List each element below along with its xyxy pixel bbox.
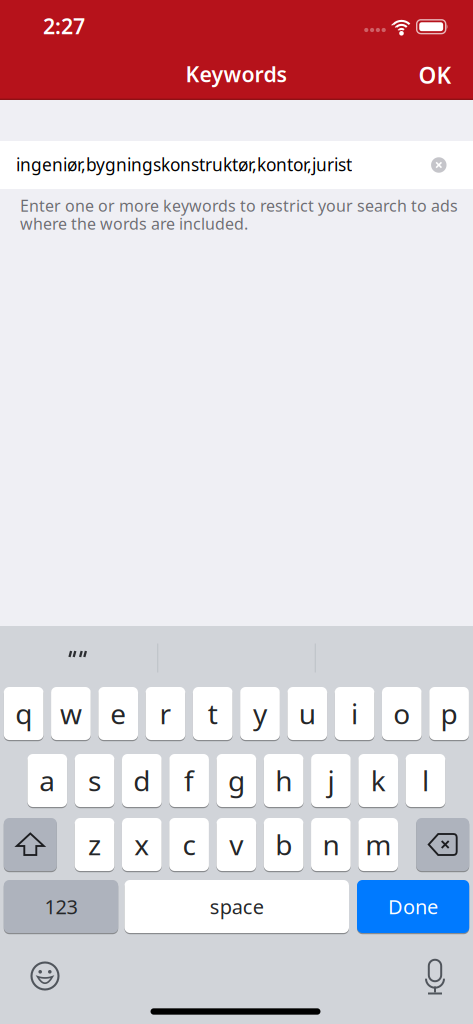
staticText: o (393, 695, 410, 732)
staticText: n (322, 826, 339, 863)
staticText: a (39, 762, 55, 799)
staticText: f (184, 762, 194, 799)
staticText: c (183, 826, 196, 863)
button[interactable]: Clear text (431, 157, 447, 173)
staticText: Keywords (185, 60, 287, 88)
staticText: Enter one or more keywords to restrict y… (20, 195, 458, 216)
button[interactable]: p (0, 0, 473, 1024)
button[interactable]: t (0, 0, 473, 1024)
staticText: u (299, 695, 316, 732)
staticText: 2:27 (43, 12, 85, 40)
staticText: b (275, 826, 292, 863)
button[interactable]: j (0, 0, 473, 1024)
staticText: s (88, 762, 101, 799)
button[interactable]: b (0, 0, 473, 1024)
button[interactable]: OK (405, 53, 465, 97)
button[interactable]: s (0, 0, 473, 1024)
button[interactable]: u (0, 0, 473, 1024)
button[interactable]: e (0, 0, 473, 1024)
staticText: v (229, 826, 243, 863)
button[interactable]: i (0, 0, 473, 1024)
button[interactable]: x (0, 0, 473, 1024)
staticText: where the words are included. (20, 213, 248, 234)
button[interactable]: g (0, 0, 473, 1024)
button[interactable]: h (0, 0, 473, 1024)
button[interactable]: Dictate (423, 959, 447, 995)
staticText: w (60, 695, 82, 732)
button[interactable]: c (0, 0, 473, 1024)
staticText: i (351, 695, 358, 732)
staticText: t (208, 695, 218, 732)
button[interactable]: z (0, 0, 473, 1024)
button[interactable]: k (0, 0, 473, 1024)
staticText: h (275, 762, 292, 799)
button[interactable]: space (0, 0, 473, 1024)
staticText: k (371, 762, 386, 799)
button[interactable]: Done (0, 0, 473, 1024)
staticText: space (210, 893, 264, 920)
staticText: x (134, 826, 149, 863)
staticText: e (110, 695, 126, 732)
button[interactable]: y (0, 0, 473, 1024)
button[interactable]: Shift (0, 0, 473, 1024)
button[interactable]: n (0, 0, 473, 1024)
button[interactable]: o (0, 0, 473, 1024)
button[interactable]: Delete (0, 0, 473, 1024)
staticText: g (228, 762, 245, 799)
button[interactable]: m (0, 0, 473, 1024)
button[interactable]: r (0, 0, 473, 1024)
button[interactable]: ingeniør,bygningskonstruktør,kontor,juri… (0, 141, 473, 189)
staticText: 123 (44, 893, 77, 920)
button[interactable]: v (0, 0, 473, 1024)
button[interactable]: a (0, 0, 473, 1024)
button[interactable]: 123 (0, 0, 473, 1024)
staticText: p (441, 695, 458, 732)
button[interactable]: q (0, 0, 473, 1024)
staticText: Done (388, 893, 438, 920)
button[interactable]: l (0, 0, 473, 1024)
staticText: OK (418, 60, 451, 90)
staticText: l (422, 762, 429, 799)
button[interactable]: d (0, 0, 473, 1024)
button[interactable]: w (0, 0, 473, 1024)
staticText: q (15, 695, 32, 732)
staticText: m (365, 826, 391, 863)
button[interactable]: f (0, 0, 473, 1024)
staticText: j (327, 762, 334, 799)
staticText: z (88, 826, 101, 863)
staticText: y (253, 695, 267, 732)
staticText: d (133, 762, 150, 799)
staticText: r (159, 695, 171, 732)
button[interactable]: Emoji (28, 959, 62, 993)
staticText: ingeniør,bygningskonstruktør,kontor,juri… (16, 153, 352, 176)
